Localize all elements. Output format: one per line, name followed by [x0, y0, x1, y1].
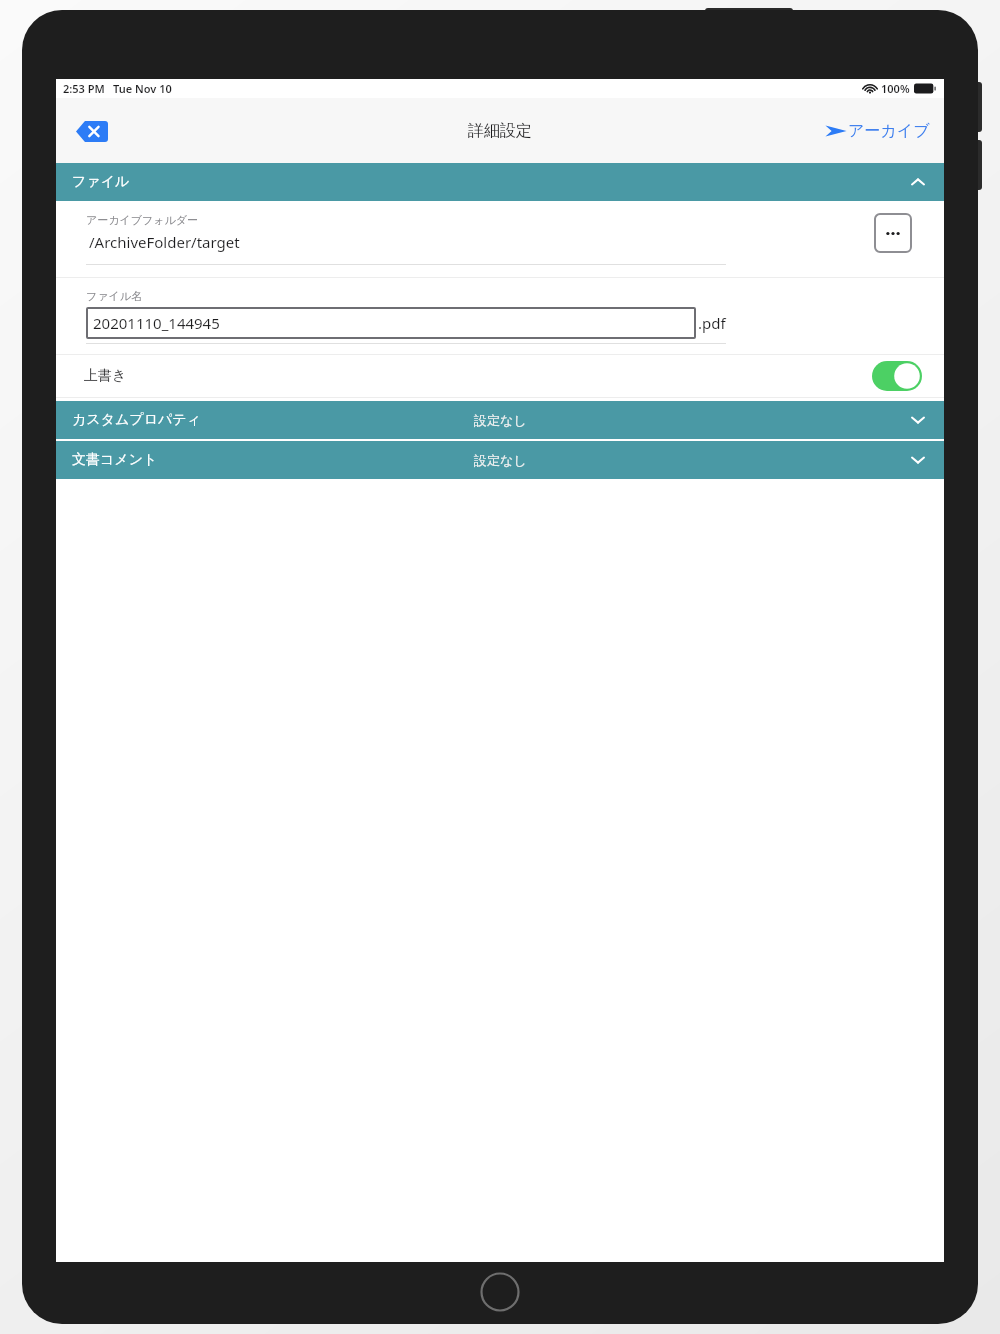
button[interactable]: Home [480, 1272, 520, 1312]
button[interactable]: Browse folder [874, 213, 912, 253]
staticText: カスタムプロパティ [72, 411, 201, 429]
staticText: /ArchiveFolder/target [89, 232, 240, 252]
button[interactable]: アーカイブフォルダー [86, 213, 726, 265]
staticText: Tue Nov 10 [113, 81, 172, 96]
staticText: 上書き [84, 367, 127, 385]
button[interactable]: アーカイブ [825, 121, 930, 141]
staticText: 2:53 PM [63, 81, 105, 96]
button[interactable]: Close [72, 116, 112, 146]
button[interactable]: 文書コメント [56, 441, 944, 479]
button[interactable]: カスタムプロパティ [56, 401, 944, 439]
button[interactable]: 上書き [56, 355, 944, 397]
button[interactable]: 20201110_144945 [86, 307, 696, 339]
staticText: 詳細設定 [468, 121, 532, 141]
button[interactable]: Overwrite toggle, on [872, 361, 922, 391]
staticText: ファイル [72, 173, 130, 191]
button[interactable]: ファイル [56, 163, 944, 201]
staticText: 20201110_144945 [93, 313, 220, 333]
staticText: 設定なし [474, 452, 527, 468]
staticText: .pdf [698, 313, 726, 333]
staticText: 文書コメント [72, 451, 158, 469]
staticText: ファイル名 [86, 289, 143, 303]
staticText: アーカイブ [848, 121, 930, 141]
staticText: アーカイブフォルダー [86, 213, 199, 227]
staticText: 100% [881, 81, 910, 96]
staticText: 設定なし [474, 412, 527, 428]
